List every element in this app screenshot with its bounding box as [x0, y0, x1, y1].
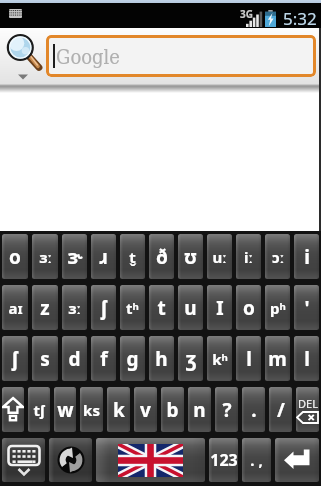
- button[interactable]: d: [62, 336, 87, 381]
- button[interactable]: Space: [96, 438, 205, 482]
- button[interactable]: ʃ: [91, 285, 116, 330]
- staticText: ': [304, 295, 310, 321]
- staticText: v: [140, 397, 151, 423]
- button[interactable]: ɜː: [32, 234, 58, 279]
- staticText: 123: [210, 449, 238, 471]
- button[interactable]: Search source: [0, 28, 46, 84]
- button[interactable]: ɜː: [62, 285, 87, 330]
- button[interactable]: ʃ: [2, 336, 28, 381]
- staticText: ɜː: [39, 247, 52, 267]
- button[interactable]: h: [149, 336, 174, 381]
- staticText: b: [166, 397, 179, 423]
- staticText: ʃ: [101, 295, 107, 321]
- staticText: . ,: [250, 450, 263, 470]
- button[interactable]: ks: [80, 387, 103, 432]
- staticText: g: [126, 346, 139, 372]
- staticText: ʒ: [185, 346, 197, 372]
- staticText: d: [68, 346, 81, 372]
- staticText: m: [268, 346, 287, 372]
- button[interactable]: I: [207, 285, 232, 330]
- staticText: Google: [56, 45, 120, 68]
- button[interactable]: ʊ: [178, 234, 203, 279]
- staticText: kʰ: [212, 349, 228, 369]
- button[interactable]: uː: [207, 234, 232, 279]
- button[interactable]: w: [54, 387, 76, 432]
- staticText: 3G: [240, 7, 253, 21]
- staticText: ʊ: [184, 244, 197, 270]
- button[interactable]: Enter: [275, 438, 319, 482]
- button[interactable]: z: [32, 285, 58, 330]
- button[interactable]: kʰ: [207, 336, 232, 381]
- button[interactable]: ð: [149, 234, 174, 279]
- button[interactable]: l: [294, 336, 319, 381]
- staticText: z: [40, 295, 50, 321]
- button[interactable]: Google: [46, 35, 316, 77]
- button[interactable]: Shift: [2, 387, 24, 432]
- button[interactable]: /: [269, 387, 292, 432]
- button[interactable]: s: [32, 336, 58, 381]
- staticText: /: [277, 397, 285, 423]
- staticText: ɹ: [99, 244, 108, 270]
- staticText: .: [251, 397, 257, 423]
- button[interactable]: iː: [236, 234, 261, 279]
- button[interactable]: t: [149, 285, 174, 330]
- button[interactable]: Delete: [296, 387, 319, 432]
- staticText: l: [304, 346, 310, 372]
- staticText: tʰ: [126, 298, 139, 318]
- button[interactable]: tʰ: [120, 285, 145, 330]
- staticText: ɔː: [272, 247, 284, 267]
- staticText: s: [40, 346, 50, 372]
- button[interactable]: l: [236, 336, 261, 381]
- button[interactable]: v: [134, 387, 157, 432]
- button[interactable]: ?: [215, 387, 238, 432]
- button[interactable]: o: [236, 285, 261, 330]
- staticText: I: [216, 295, 224, 321]
- button[interactable]: b: [161, 387, 184, 432]
- button[interactable]: k: [107, 387, 130, 432]
- staticText: tʃ: [33, 400, 45, 420]
- staticText: aɪ: [8, 298, 23, 318]
- staticText: f: [100, 346, 108, 372]
- button[interactable]: . ,: [242, 438, 271, 482]
- button[interactable]: i: [294, 234, 319, 279]
- staticText: u: [184, 295, 197, 321]
- staticText: ʃ: [12, 346, 18, 372]
- staticText: w: [57, 397, 74, 423]
- button[interactable]: ʒ: [178, 336, 203, 381]
- staticText: ɝ: [67, 244, 83, 270]
- staticText: uː: [212, 247, 227, 267]
- button[interactable]: n: [188, 387, 211, 432]
- staticText: iː: [244, 247, 253, 267]
- staticText: DEL: [298, 396, 318, 411]
- button[interactable]: 123: [209, 438, 238, 482]
- staticText: l: [246, 346, 252, 372]
- button[interactable]: t̬: [120, 234, 145, 279]
- staticText: t̬: [129, 247, 136, 267]
- button[interactable]: ': [294, 285, 319, 330]
- button[interactable]: ɔː: [265, 234, 290, 279]
- button[interactable]: f: [91, 336, 116, 381]
- staticText: ð: [156, 244, 168, 270]
- staticText: i: [304, 244, 310, 270]
- button[interactable]: Switch input method: [49, 438, 92, 482]
- button[interactable]: Hide keyboard: [2, 438, 45, 482]
- button[interactable]: ɹ: [91, 234, 116, 279]
- staticText: ks: [83, 400, 100, 420]
- staticText: h: [155, 346, 168, 372]
- button[interactable]: tʃ: [28, 387, 50, 432]
- button[interactable]: m: [265, 336, 290, 381]
- button[interactable]: ɝ: [62, 234, 87, 279]
- button[interactable]: aɪ: [2, 285, 28, 330]
- staticText: o: [9, 244, 21, 270]
- button[interactable]: pʰ: [265, 285, 290, 330]
- button[interactable]: o: [2, 234, 28, 279]
- staticText: k: [113, 397, 125, 423]
- button[interactable]: g: [120, 336, 145, 381]
- staticText: ɜː: [68, 298, 81, 318]
- button[interactable]: .: [242, 387, 265, 432]
- staticText: t: [157, 295, 166, 321]
- staticText: pʰ: [270, 298, 286, 318]
- staticText: n: [193, 397, 206, 423]
- button[interactable]: u: [178, 285, 203, 330]
- staticText: o: [243, 295, 255, 321]
